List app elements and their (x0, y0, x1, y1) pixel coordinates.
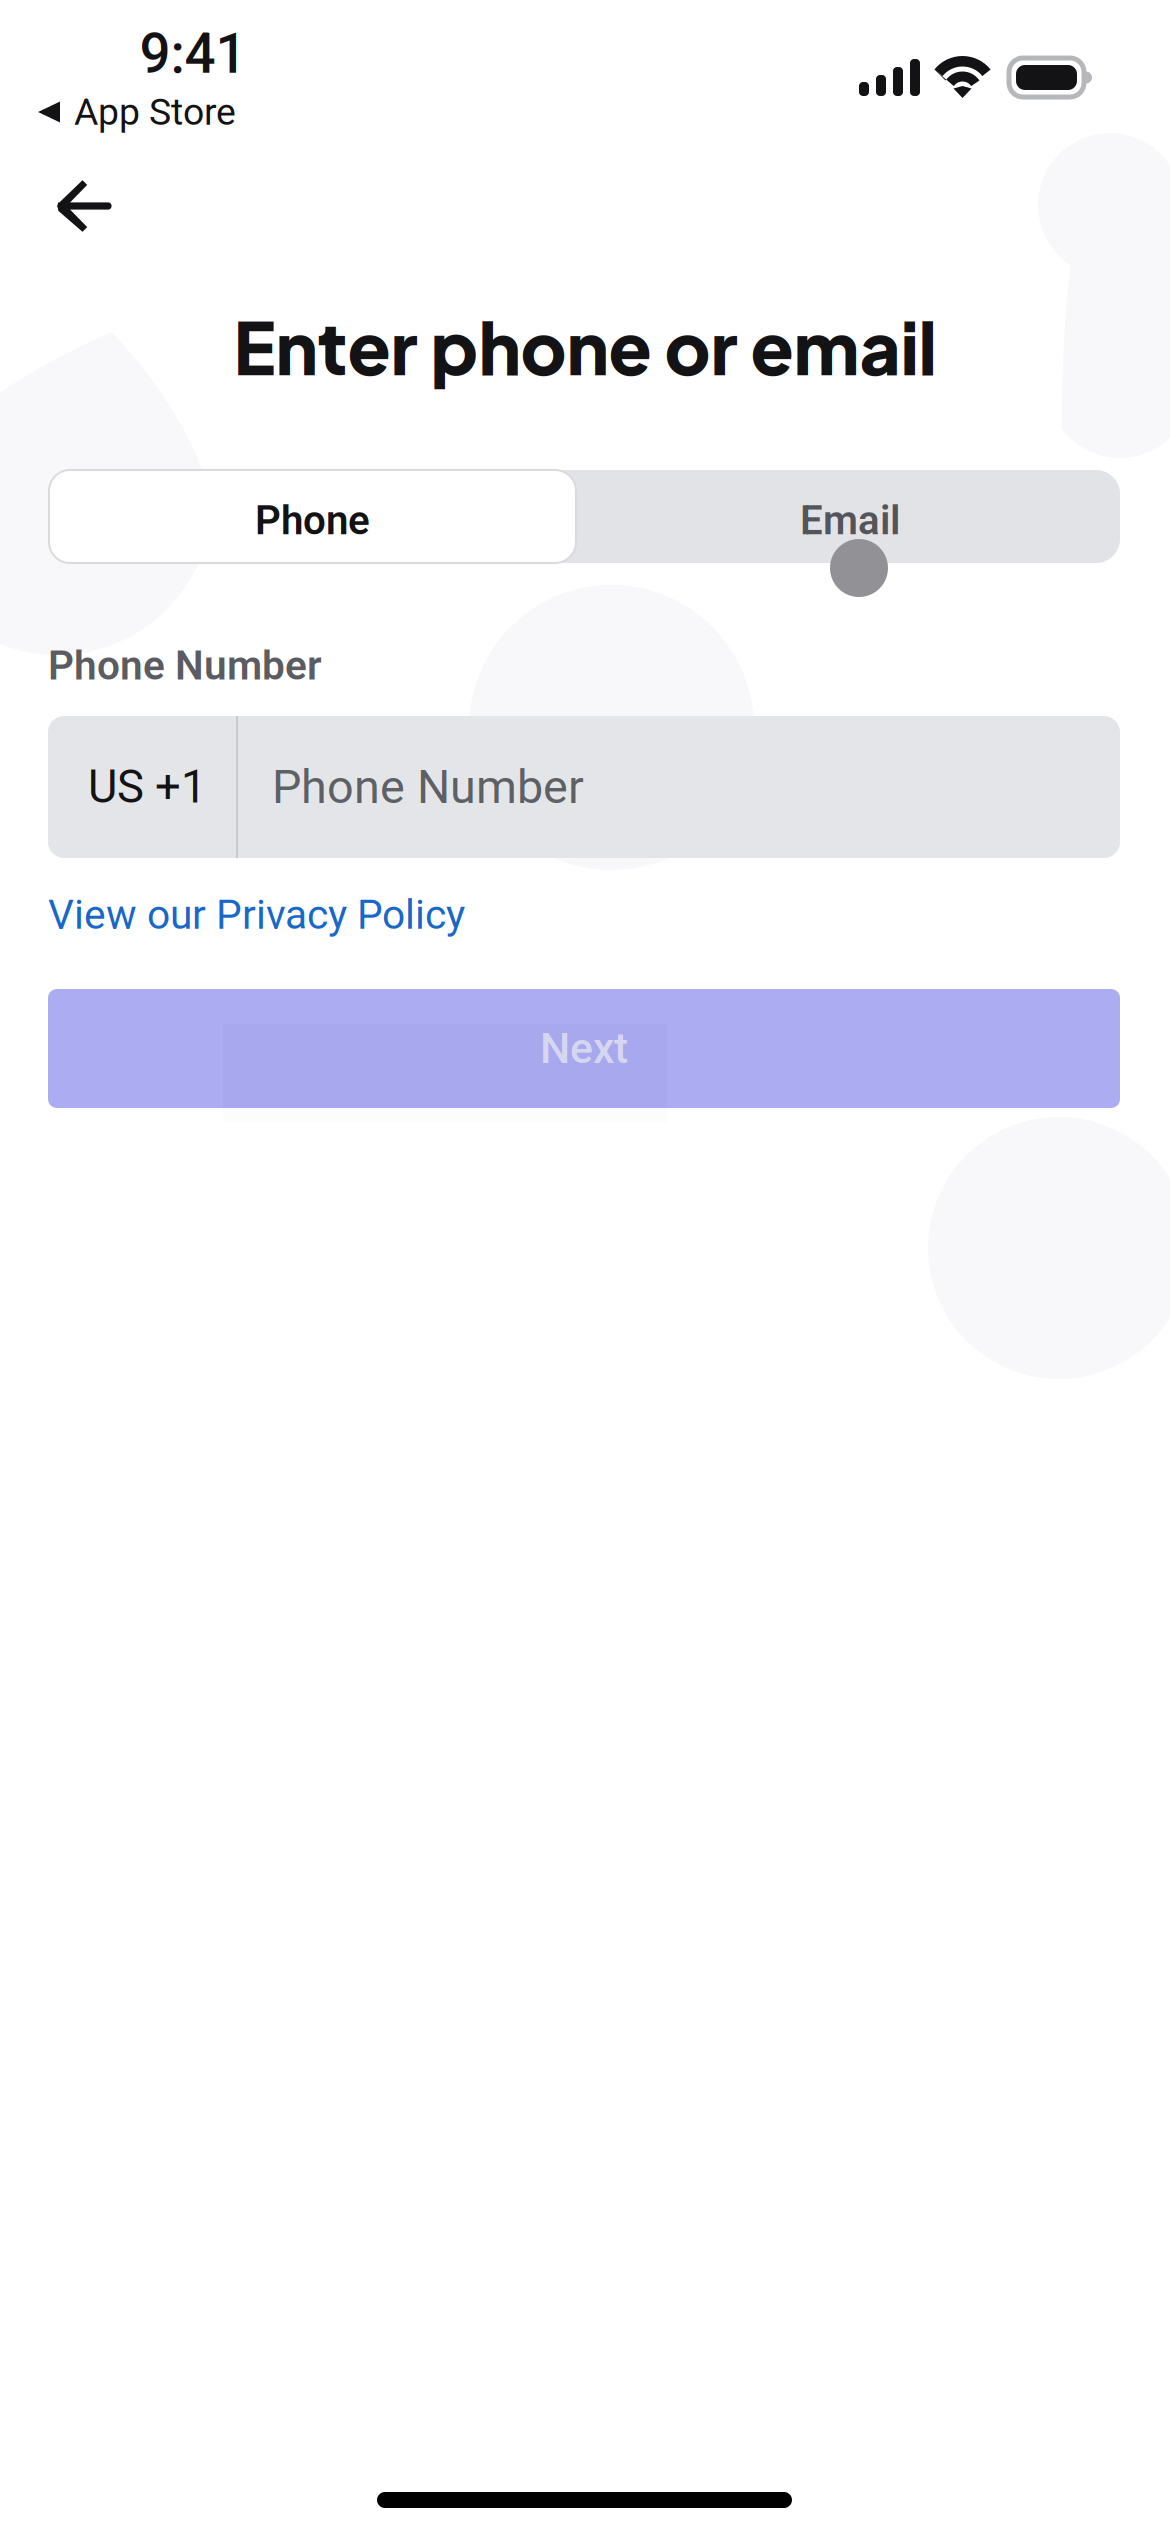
button[interactable]: Back (20, 149, 146, 263)
staticText: Next (540, 1023, 628, 1073)
staticText: US +1 (88, 760, 206, 813)
staticText: Enter phone or email (233, 302, 936, 391)
staticText: Email (800, 497, 900, 544)
button[interactable]: Phone (49, 470, 576, 563)
button[interactable]: Phone Number (238, 716, 1120, 858)
staticText: View our Privacy Policy (48, 891, 465, 939)
button[interactable]: Email (580, 470, 1120, 563)
staticText: App Store (74, 90, 236, 134)
button[interactable]: Return to App Store (0, 90, 1170, 134)
button[interactable]: Country code US +1 (48, 716, 236, 858)
button[interactable]: Next (48, 989, 1120, 1108)
staticText: Phone Number (272, 760, 584, 814)
staticText: 9:41 (139, 22, 246, 86)
staticText: Phone Number (48, 642, 322, 689)
staticText: Phone (255, 497, 370, 544)
button[interactable]: View our Privacy Policy (46, 883, 467, 947)
